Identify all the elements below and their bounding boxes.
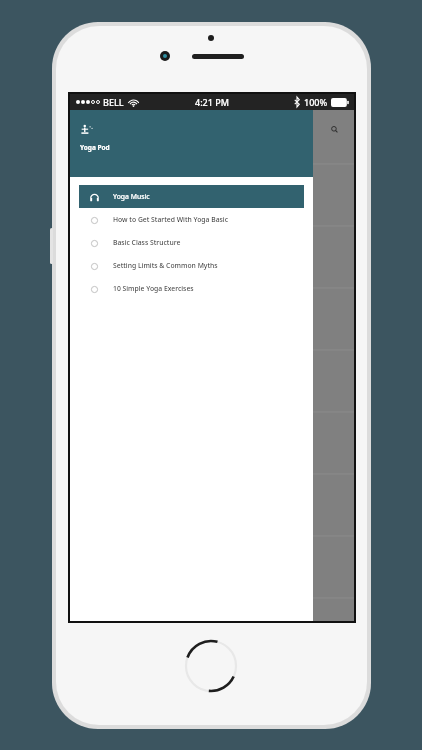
staticText: 100%	[304, 96, 328, 108]
staticText: 10 Simple Yoga Exercises	[113, 284, 194, 293]
staticText: 4:21 PM	[195, 96, 229, 108]
button[interactable]: Yoga Music	[79, 185, 304, 208]
staticText: Basic Class Structure	[113, 238, 181, 247]
button[interactable]: Search	[328, 123, 340, 135]
staticText: How to Get Started With Yoga Basic	[113, 215, 229, 224]
button[interactable]: 10 Simple Yoga Exercises	[79, 277, 304, 300]
staticText: Yoga Pod	[80, 143, 110, 152]
button[interactable]: Setting Limits & Common Myths	[79, 254, 304, 277]
button[interactable]: How to Get Started With Yoga Basic	[79, 208, 304, 231]
staticText: BELL	[103, 96, 124, 108]
button[interactable]: Basic Class Structure	[79, 231, 304, 254]
staticText: Yoga Music	[113, 192, 150, 201]
button[interactable]: Home	[183, 638, 239, 694]
staticText: Setting Limits & Common Myths	[113, 261, 218, 270]
